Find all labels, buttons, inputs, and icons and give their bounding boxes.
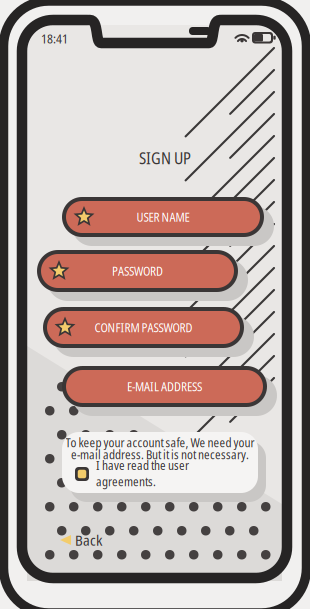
staticText: e-mail address. But it is not necessary. (71, 446, 249, 463)
staticText: CONFIRM PASSWORD (94, 319, 192, 336)
staticText: I have read the user agreements. (96, 457, 189, 490)
staticText: To keep your account safe, We need your (65, 434, 254, 451)
staticText: 18:41 (41, 30, 68, 47)
button[interactable]: PASSWORD (37, 250, 250, 304)
button[interactable]: Back (60, 533, 106, 549)
button[interactable]: CONFIRM PASSWORD (43, 307, 256, 360)
button[interactable]: I have read the user agreements. (75, 466, 247, 482)
staticText: PASSWORD (112, 263, 163, 279)
staticText: Back (75, 530, 102, 550)
button[interactable]: E-MAIL ADDRESS (62, 366, 279, 419)
button[interactable]: USER NAME (62, 197, 276, 249)
staticText: SIGN UP (139, 147, 191, 169)
staticText: E-MAIL ADDRESS (127, 378, 202, 395)
staticText: USER NAME (136, 209, 189, 225)
